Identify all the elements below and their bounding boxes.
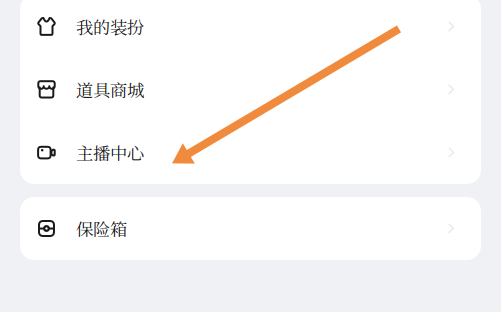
- button[interactable]: 主播中心: [20, 121, 481, 184]
- staticText: 道具商城: [76, 77, 144, 102]
- button[interactable]: 我的装扮: [20, 0, 481, 58]
- button[interactable]: 保险箱: [20, 197, 481, 260]
- button[interactable]: 道具商城: [20, 58, 481, 121]
- staticText: 我的装扮: [76, 14, 144, 39]
- staticText: 保险箱: [76, 216, 127, 241]
- staticText: 主播中心: [76, 140, 144, 165]
